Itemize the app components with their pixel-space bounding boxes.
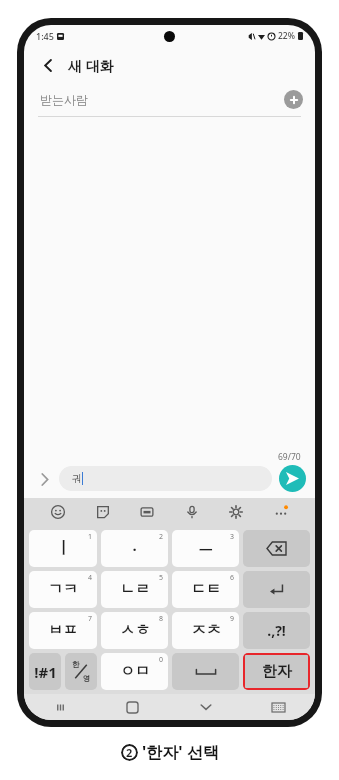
staticText: ㅈㅊ [191, 621, 221, 640]
staticText: 7 [88, 614, 93, 624]
button[interactable] [243, 571, 310, 608]
button[interactable]: Send [279, 465, 306, 492]
button[interactable]: .,?! [243, 612, 310, 649]
staticText: ㅅㅎ [120, 621, 150, 640]
staticText: 2 [159, 532, 164, 542]
button[interactable]: ㅈㅊ [172, 612, 239, 649]
button[interactable]: Settings [226, 502, 246, 522]
staticText: 4 [88, 573, 93, 583]
button[interactable]: Add recipient [284, 90, 303, 109]
button[interactable]: · [101, 530, 168, 567]
staticText: 丨 [56, 539, 71, 558]
button[interactable] [243, 530, 310, 567]
staticText: ㄴㄹ [120, 580, 150, 599]
button[interactable]: ㅇㅁ [101, 653, 168, 690]
button[interactable]: Expand [32, 467, 56, 491]
staticText: .,?! [267, 621, 286, 640]
staticText: 6 [230, 573, 235, 583]
button[interactable]: 받는사람 [24, 83, 315, 116]
button[interactable]: ᅳ [172, 530, 239, 567]
staticText: 2 [126, 745, 133, 760]
button[interactable]: Home [96, 694, 169, 720]
staticText: · [132, 539, 137, 559]
staticText: 새 대화 [68, 56, 114, 75]
staticText: ㄷㅌ [191, 580, 221, 599]
button[interactable]: ㄱㅋ [29, 571, 97, 608]
staticText: ㅂㅍ [48, 621, 78, 640]
staticText: 1:45 [36, 30, 54, 42]
button[interactable]: Stickers [93, 502, 113, 522]
staticText: 영 [83, 674, 91, 683]
staticText: 받는사람 [40, 92, 88, 107]
button[interactable] [172, 653, 239, 690]
button[interactable]: Voice input [182, 502, 202, 522]
staticText: ㅇㅁ [120, 662, 150, 681]
staticText: ㄱㅋ [48, 580, 78, 599]
button[interactable]: 한자 [243, 653, 310, 690]
staticText: !#1 [34, 662, 57, 682]
button[interactable]: 궈 [59, 466, 272, 491]
button[interactable]: 한 [65, 653, 97, 690]
staticText: 1 [88, 532, 93, 542]
staticText: 69/70 [278, 451, 301, 463]
staticText: 한자 [262, 662, 292, 681]
button[interactable]: More options [271, 502, 291, 522]
button[interactable]: Hide keyboard [169, 694, 242, 720]
button[interactable]: GIF [137, 502, 157, 522]
button[interactable]: Back [37, 54, 59, 76]
staticText: ᅳ [199, 540, 213, 558]
button[interactable]: Back [24, 47, 315, 83]
staticText: 8 [159, 614, 164, 624]
staticText: 5 [159, 573, 164, 583]
staticText: 22% [278, 30, 295, 42]
button[interactable]: ㄴㄹ [101, 571, 168, 608]
button[interactable]: Recents [24, 694, 96, 720]
button[interactable]: Keyboard layout [242, 694, 315, 720]
staticText: 한 [72, 660, 80, 669]
button[interactable]: ㄷㅌ [172, 571, 239, 608]
staticText: 9 [230, 614, 235, 624]
button[interactable]: !#1 [29, 653, 61, 690]
staticText: '한자' 선택 [142, 741, 219, 763]
button[interactable]: ㅂㅍ [29, 612, 97, 649]
button[interactable]: ㅅㅎ [101, 612, 168, 649]
staticText: 3 [230, 532, 235, 542]
staticText: 궈 [72, 472, 82, 485]
button[interactable]: Emoji [48, 502, 68, 522]
staticText: 0 [159, 655, 164, 665]
button[interactable]: 丨 [29, 530, 97, 567]
